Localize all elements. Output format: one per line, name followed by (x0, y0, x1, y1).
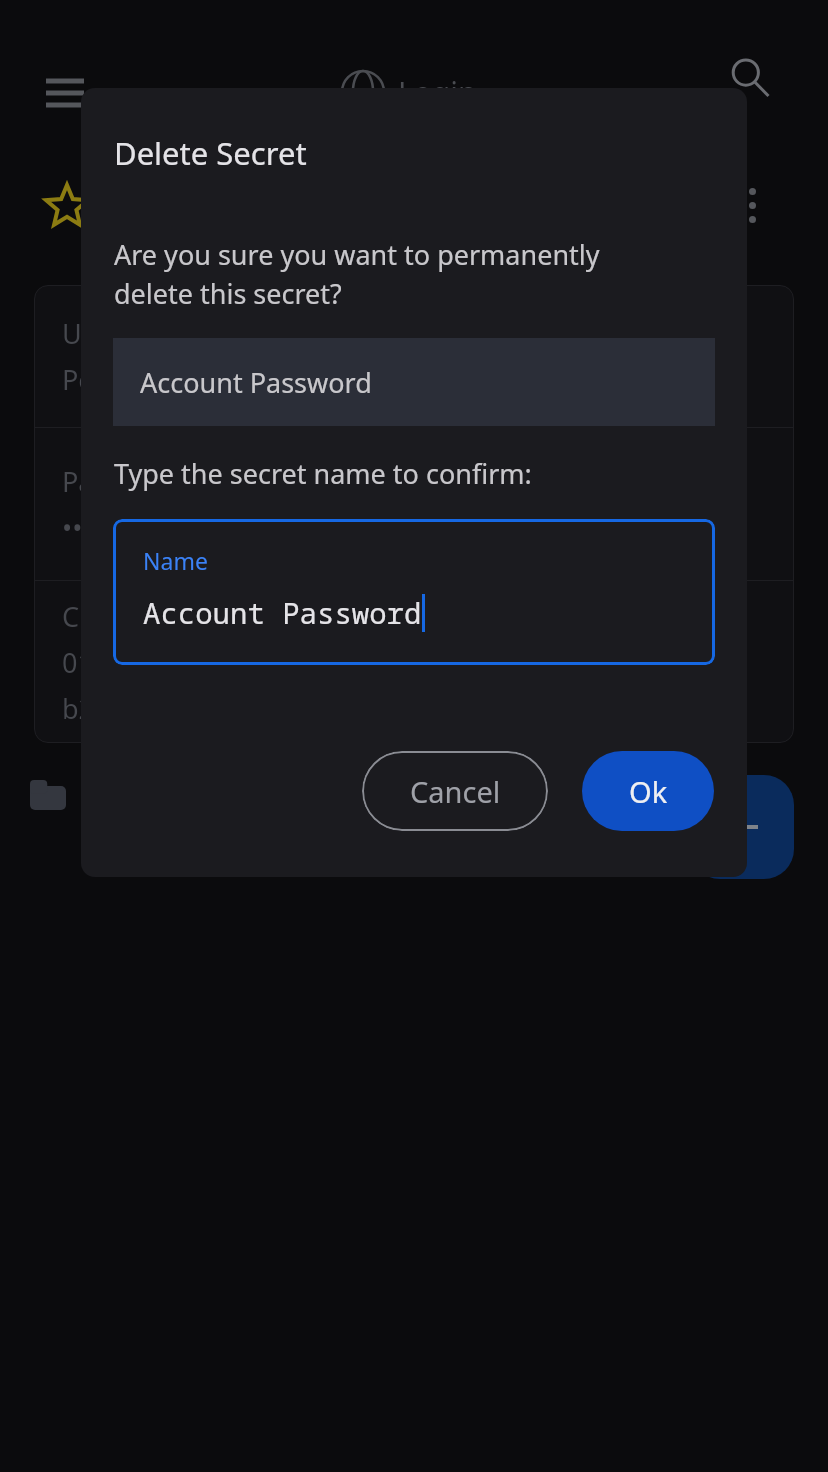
staticText: Password (62, 463, 185, 500)
button[interactable]: More options (736, 188, 768, 234)
staticText: Personal (62, 361, 173, 398)
staticText: Name (143, 545, 208, 576)
staticText: Login (398, 72, 477, 113)
button[interactable]: Ok (582, 751, 714, 831)
button[interactable]: Search (718, 46, 782, 110)
button[interactable]: Add (690, 775, 794, 879)
button[interactable]: Favorite (38, 178, 96, 236)
staticText: Cancel (410, 772, 501, 811)
staticText: Ok (629, 772, 668, 811)
staticText: Created (62, 598, 162, 635)
staticText: b2345678 (62, 690, 187, 727)
staticText: Username (62, 315, 194, 352)
staticText: •••••• (62, 509, 123, 546)
button[interactable]: Default (30, 768, 170, 822)
staticText: Account Password (140, 364, 372, 401)
staticText: 0123456 (62, 644, 171, 681)
button[interactable]: Menu (30, 58, 100, 128)
button[interactable]: Name (113, 519, 715, 665)
button[interactable]: Cancel (362, 751, 548, 831)
staticText: Are you sure you want to permanently del… (114, 236, 600, 312)
staticText: Account Password (143, 593, 422, 632)
staticText: Type the secret name to confirm: (114, 455, 532, 492)
staticText: Delete Secret (114, 132, 307, 174)
